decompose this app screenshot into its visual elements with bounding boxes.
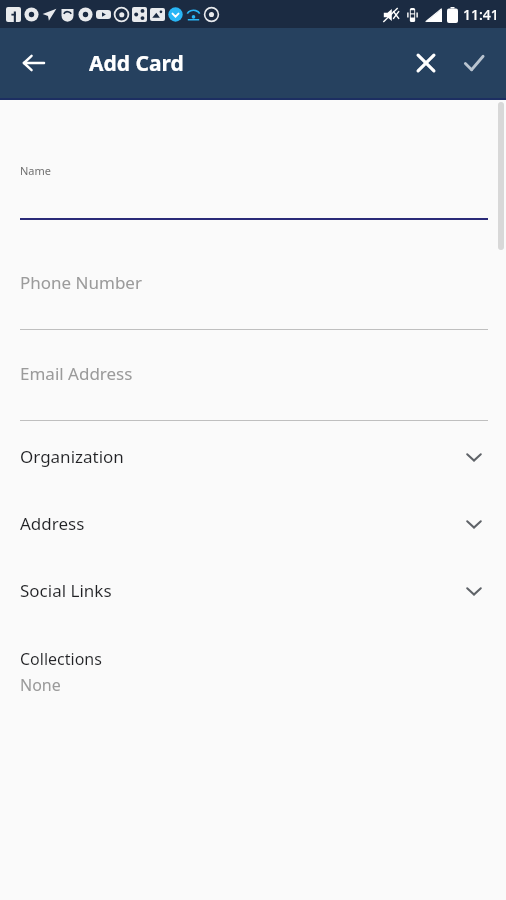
staticText: Phone Number	[20, 271, 142, 294]
staticText: Email Address	[20, 362, 133, 385]
staticText: Social Links	[20, 579, 464, 602]
button[interactable]: Name	[0, 100, 506, 224]
button[interactable]: Save	[450, 39, 498, 87]
button[interactable]: Address	[0, 512, 506, 535]
staticText: 11:41	[463, 5, 499, 24]
staticText: Name	[20, 163, 52, 178]
button[interactable]: Email Address	[0, 330, 506, 421]
staticText: None	[20, 674, 61, 696]
button[interactable]: Back	[10, 39, 58, 87]
staticText: Address	[20, 512, 464, 535]
button[interactable]: Discard	[402, 39, 450, 87]
staticText: Organization	[20, 445, 464, 468]
button[interactable]: Collections	[0, 646, 506, 706]
button[interactable]: Organization	[0, 445, 506, 468]
staticText: Add Card	[89, 49, 184, 78]
button[interactable]: Social Links	[0, 579, 506, 602]
button[interactable]: Phone Number	[0, 224, 506, 330]
staticText: Collections	[20, 648, 102, 670]
